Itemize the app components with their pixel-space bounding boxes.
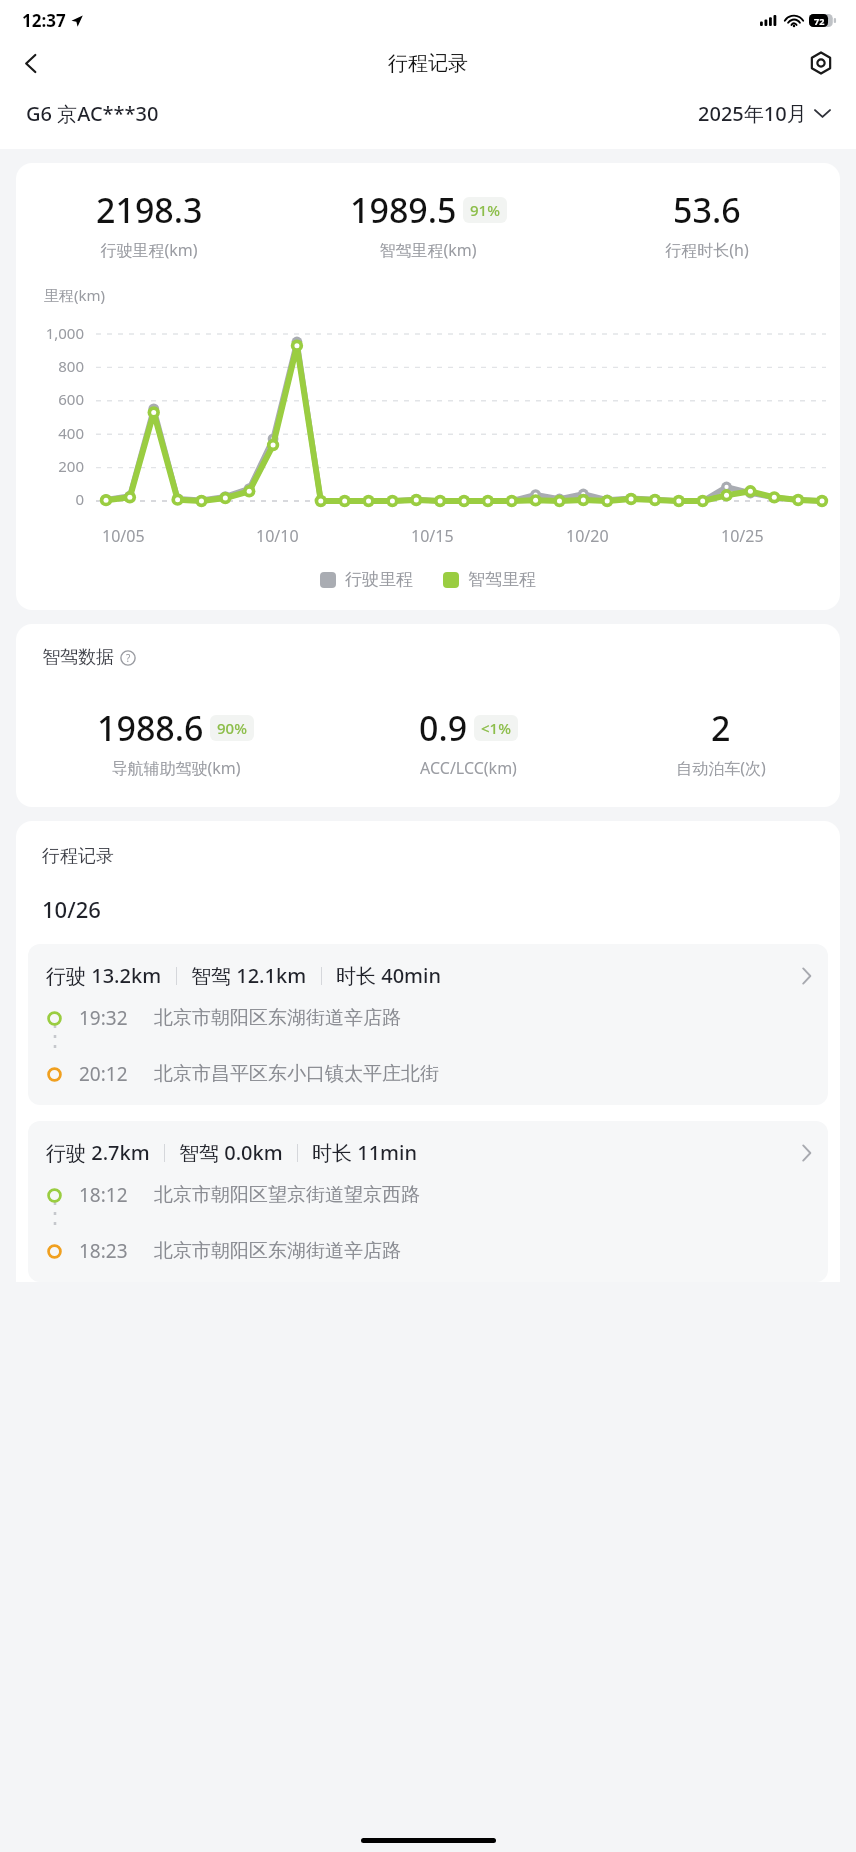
staticText: 智驾 12.1km <box>191 962 307 989</box>
staticText: 10/10 <box>256 525 299 547</box>
staticText: <1% <box>481 718 511 738</box>
staticText: 10/20 <box>566 525 609 547</box>
staticText: 1,000 <box>30 323 84 343</box>
staticText: 智驾里程 <box>468 569 536 590</box>
staticText: 智驾 0.0km <box>179 1139 283 1166</box>
staticText: 北京市朝阳区望京街道望京西路 <box>154 1183 420 1207</box>
staticText: 2 <box>711 705 731 751</box>
staticText: 10/15 <box>411 525 454 547</box>
staticText: 18:23 <box>79 1238 128 1264</box>
staticText: 20:12 <box>79 1061 128 1087</box>
staticText: 智驾里程(km) <box>379 239 477 261</box>
staticText: 时长 40min <box>336 962 441 989</box>
staticText: ? <box>126 651 131 665</box>
staticText: 行驶 2.7km <box>46 1139 150 1166</box>
staticText: 200 <box>30 456 84 476</box>
staticText: 行驶里程(km) <box>100 239 198 261</box>
staticText: 10/05 <box>102 525 145 547</box>
staticText: 行程记录 <box>388 51 468 76</box>
button[interactable]: 返回 <box>8 40 54 86</box>
staticText: 400 <box>30 423 84 443</box>
button[interactable]: 智驾数据 <box>42 646 136 669</box>
staticText: 53.6 <box>673 187 741 233</box>
button[interactable]: 行驶里程 <box>320 569 413 590</box>
staticText: 行驶 13.2km <box>46 962 162 989</box>
staticText: 北京市朝阳区东湖街道辛店路 <box>154 1006 401 1030</box>
staticText: 10/26 <box>42 894 101 924</box>
staticText: 导航辅助驾驶(km) <box>111 757 241 779</box>
staticText: 智驾数据 <box>42 646 114 669</box>
staticText: 北京市昌平区东小口镇太平庄北街 <box>154 1062 439 1086</box>
button[interactable]: 2025年10月 <box>698 100 830 127</box>
staticText: 0.9 <box>419 705 468 751</box>
staticText: 里程(km) <box>44 285 106 305</box>
staticText: 2025年10月 <box>698 100 807 127</box>
staticText: 时长 11min <box>312 1139 417 1166</box>
staticText: 600 <box>30 389 84 409</box>
staticText: 1988.6 <box>97 705 204 751</box>
button[interactable]: 行驶 13.2km <box>28 944 828 1105</box>
staticText: G6 京AC***30 <box>26 100 159 127</box>
staticText: 91% <box>470 200 500 220</box>
staticText: 19:32 <box>79 1005 128 1031</box>
button[interactable]: 行驶 2.7km <box>28 1121 828 1282</box>
staticText: 90% <box>217 718 247 738</box>
button[interactable]: 设置 <box>798 40 844 86</box>
staticText: 10/25 <box>721 525 764 547</box>
button[interactable]: 智驾里程 <box>443 569 536 590</box>
staticText: 2198.3 <box>96 187 203 233</box>
staticText: 18:12 <box>79 1182 128 1208</box>
staticText: 行程记录 <box>42 845 114 868</box>
staticText: 72 <box>814 15 825 27</box>
staticText: 自动泊车(次) <box>676 757 766 779</box>
staticText: ACC/LCC(km) <box>420 757 517 779</box>
staticText: 行驶里程 <box>345 569 413 590</box>
staticText: 800 <box>30 356 84 376</box>
staticText: 1989.5 <box>350 187 457 233</box>
staticText: 12:37 <box>22 9 66 32</box>
staticText: 行程时长(h) <box>665 239 749 261</box>
staticText: 0 <box>30 489 84 509</box>
staticText: 北京市朝阳区东湖街道辛店路 <box>154 1239 401 1263</box>
